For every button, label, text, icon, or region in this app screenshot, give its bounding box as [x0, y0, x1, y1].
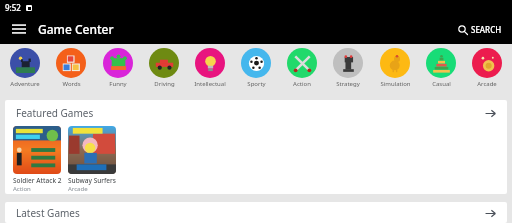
button[interactable]: Soldier Attack 2	[13, 126, 62, 193]
button[interactable]: Latest Games	[5, 202, 507, 223]
staticText: Arcade	[477, 80, 497, 88]
button[interactable]: Driving	[143, 48, 185, 88]
button[interactable]: SEARCH	[456, 20, 504, 39]
button[interactable]: Subway Surfers	[68, 126, 117, 193]
button[interactable]: Open navigation menu	[6, 16, 32, 42]
button[interactable]: Casual	[420, 48, 462, 88]
button[interactable]: Words	[50, 48, 92, 88]
button[interactable]: Strategy	[327, 48, 369, 88]
staticText: Words	[62, 80, 81, 88]
staticText: 9:52	[5, 2, 21, 13]
staticText: Game Center	[38, 21, 114, 37]
staticText: Action	[13, 185, 31, 193]
button[interactable]: Action	[281, 48, 323, 88]
staticText: Funny	[109, 80, 127, 88]
staticText: Featured Games	[16, 106, 94, 120]
button[interactable]: Sporty	[235, 48, 277, 88]
button[interactable]: Intellectual	[189, 48, 231, 88]
staticText: Intellectual	[194, 80, 226, 88]
staticText: Adventure	[10, 80, 40, 88]
staticText: Strategy	[336, 80, 360, 88]
staticText: Arcade	[68, 185, 88, 193]
staticText: Driving	[154, 80, 175, 88]
button[interactable]: Funny	[97, 48, 139, 88]
staticText: Sporty	[247, 80, 266, 88]
staticText: Action	[293, 80, 311, 88]
staticText: Simulation	[380, 80, 411, 88]
button[interactable]: Simulation	[374, 48, 416, 88]
button[interactable]: Arcade	[466, 48, 508, 88]
button[interactable]: Featured Games	[5, 100, 507, 126]
staticText: Casual	[432, 80, 451, 88]
staticText: SEARCH	[471, 24, 502, 35]
other: See all latest games	[481, 204, 499, 222]
button[interactable]: Adventure	[4, 48, 46, 88]
staticText: Latest Games	[16, 206, 80, 220]
staticText: Soldier Attack 2	[13, 176, 62, 185]
staticText: Subway Surfers	[68, 176, 116, 185]
other: See all featured games	[481, 104, 499, 122]
